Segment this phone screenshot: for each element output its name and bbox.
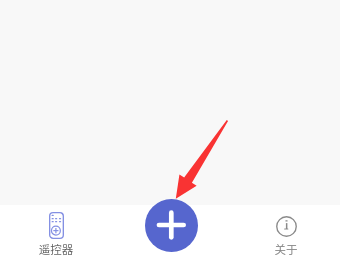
staticText: 遥控器: [19, 241, 93, 258]
button[interactable]: 关于: [249, 205, 323, 258]
button[interactable]: 遥控器: [19, 205, 93, 258]
staticText: 关于: [249, 241, 323, 258]
button[interactable]: Add remote: [145, 199, 198, 252]
